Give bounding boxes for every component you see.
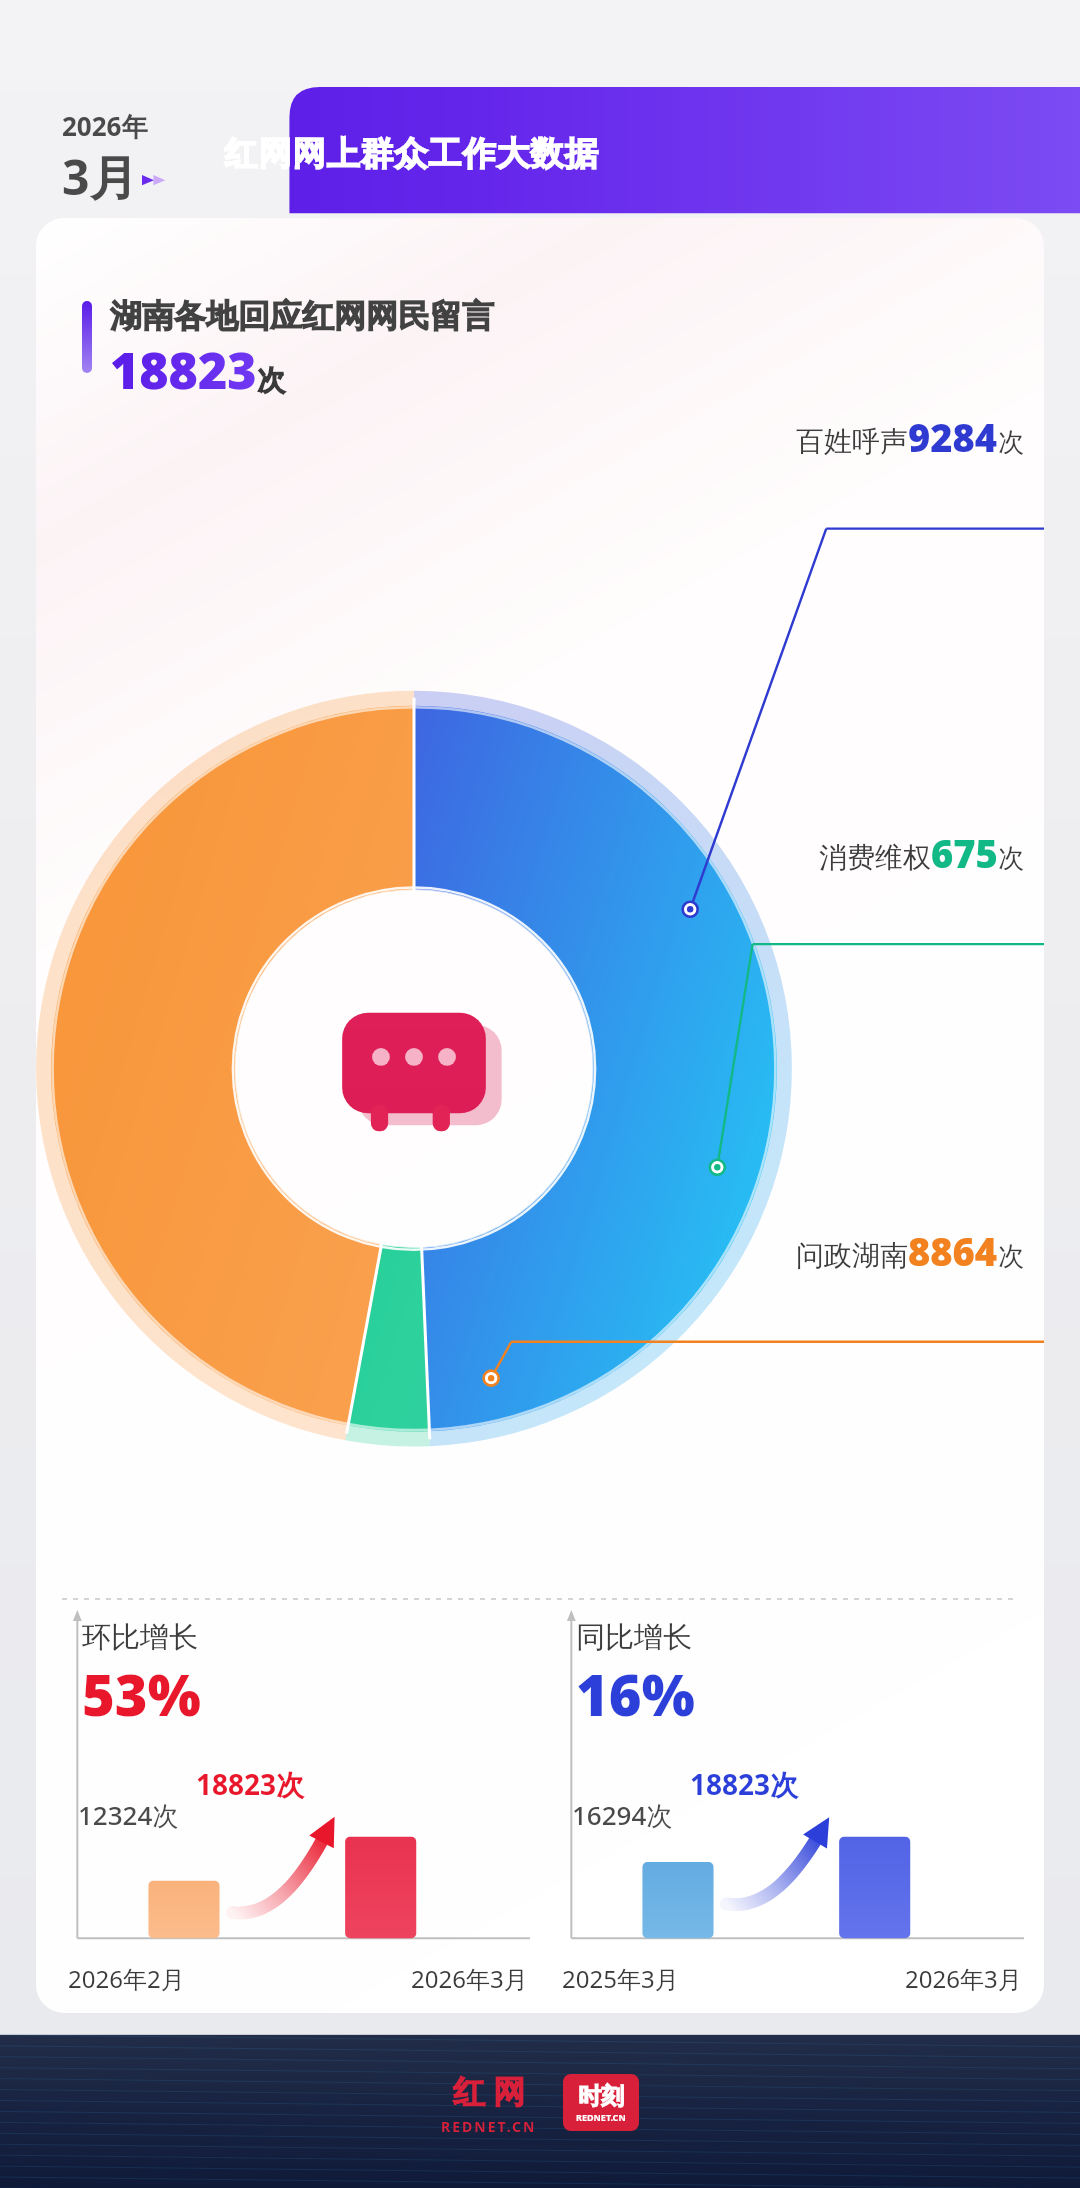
staticText: 16294次 bbox=[572, 1797, 673, 1833]
button[interactable]: 百姓呼声 bbox=[796, 411, 1024, 463]
staticText: 同比增长 bbox=[576, 1619, 692, 1656]
staticText: 时刻 bbox=[578, 2082, 624, 2111]
staticText: 百姓呼声 bbox=[796, 424, 908, 459]
staticText: 9284 bbox=[908, 411, 998, 463]
staticText: 53% bbox=[82, 1656, 201, 1732]
button[interactable]: 红网 RedNet 时刻 logo bbox=[441, 2069, 639, 2136]
staticText: 2026年3月 bbox=[411, 1962, 528, 1995]
staticText: 16% bbox=[576, 1656, 695, 1732]
staticText: 问政湖南 bbox=[796, 1238, 908, 1273]
staticText: 次 bbox=[998, 1240, 1024, 1273]
staticText: REDNET.CN bbox=[576, 2111, 626, 2123]
staticText: 次 bbox=[998, 842, 1024, 875]
staticText: 8864 bbox=[908, 1225, 998, 1277]
button[interactable]: 同比增长 bbox=[550, 1607, 1024, 1999]
staticText: 2026年3月 bbox=[905, 1962, 1022, 1995]
button[interactable]: 环比增长 bbox=[56, 1607, 530, 1999]
staticText: 18823次 bbox=[690, 1765, 799, 1803]
staticText: 18823次 bbox=[196, 1765, 305, 1803]
staticText: 次 bbox=[257, 363, 285, 398]
staticText: 675 bbox=[931, 827, 998, 879]
staticText: 2025年3月 bbox=[562, 1962, 679, 1995]
staticText: 2026年2月 bbox=[68, 1962, 185, 1995]
staticText: 红 网 bbox=[453, 2069, 526, 2113]
staticText: 消费维权 bbox=[819, 840, 931, 875]
staticText: REDNET.CN bbox=[441, 2117, 537, 2136]
staticText: 次 bbox=[998, 426, 1024, 459]
staticText: 12324次 bbox=[78, 1797, 179, 1833]
staticText: 18823 bbox=[110, 336, 257, 404]
staticText: 3月 bbox=[62, 144, 138, 210]
staticText: 环比增长 bbox=[82, 1619, 198, 1656]
staticText: 2026年 bbox=[62, 108, 148, 144]
button[interactable]: 消费维权 bbox=[819, 827, 1024, 879]
staticText: 红网网上群众工作大数据 bbox=[224, 133, 598, 175]
button[interactable]: 问政湖南 bbox=[796, 1225, 1024, 1277]
staticText: 湖南各地回应红网网民留言 bbox=[110, 296, 494, 336]
